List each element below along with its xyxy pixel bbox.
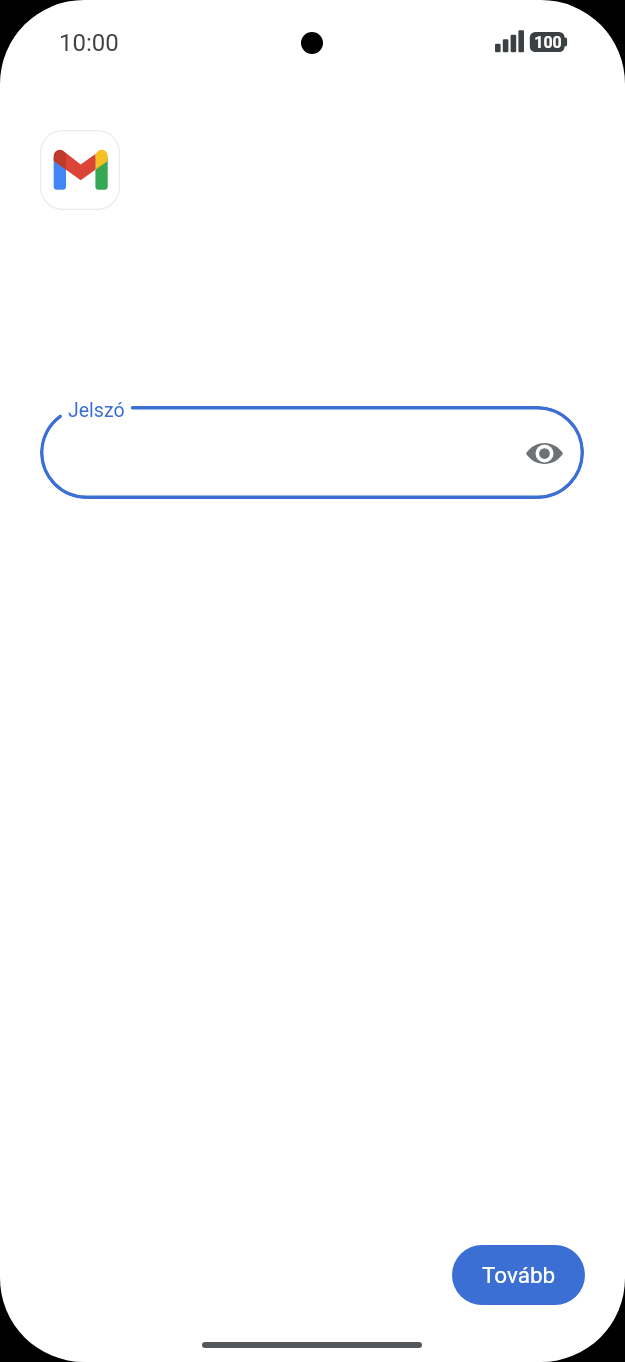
staticText: Jelszó [68, 399, 125, 422]
button[interactable]: Jelszó [40, 406, 584, 499]
other: Gmail [40, 130, 120, 210]
button[interactable]: Tovább [452, 1245, 585, 1305]
staticText: 100 [534, 33, 562, 52]
staticText: 10:00 [59, 29, 119, 57]
staticText: Tovább [482, 1262, 556, 1288]
button[interactable]: Show password [520, 429, 568, 477]
